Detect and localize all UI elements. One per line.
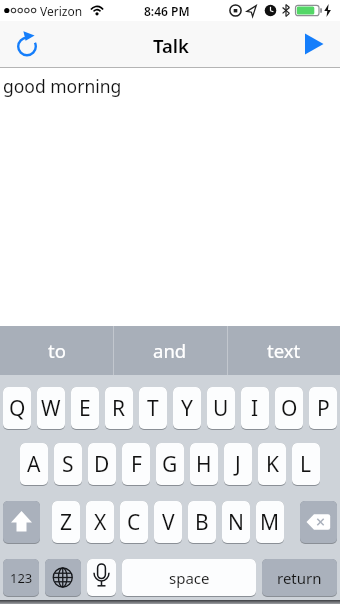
button[interactable]: A bbox=[20, 443, 48, 486]
button[interactable] bbox=[87, 559, 116, 597]
button[interactable] bbox=[300, 501, 337, 544]
staticText: T bbox=[147, 394, 159, 423]
staticText: good morning bbox=[3, 74, 122, 98]
staticText: Y bbox=[181, 394, 193, 423]
staticText: L bbox=[300, 450, 312, 479]
staticText: U bbox=[213, 394, 229, 423]
staticText: 8:46 PM bbox=[144, 3, 190, 19]
button[interactable]: X bbox=[86, 501, 114, 544]
button[interactable]: B bbox=[188, 501, 216, 544]
button[interactable]: U bbox=[207, 387, 235, 430]
button[interactable]: C bbox=[120, 501, 148, 544]
button[interactable]: text bbox=[227, 326, 340, 375]
staticText: return bbox=[277, 568, 322, 588]
staticText: P bbox=[317, 394, 330, 423]
button[interactable]: O bbox=[275, 387, 303, 430]
button[interactable]: W bbox=[37, 387, 65, 430]
button[interactable]: 123 bbox=[3, 559, 39, 597]
staticText: O bbox=[281, 394, 298, 423]
button[interactable]: M bbox=[256, 501, 284, 544]
button[interactable]: return bbox=[262, 559, 337, 597]
button[interactable]: J bbox=[224, 443, 252, 486]
button[interactable]: Z bbox=[52, 501, 80, 544]
button[interactable]: to bbox=[0, 326, 113, 375]
button[interactable] bbox=[298, 28, 330, 60]
staticText: B bbox=[195, 508, 209, 537]
button[interactable]: D bbox=[88, 443, 116, 486]
staticText: E bbox=[79, 394, 91, 423]
staticText: N bbox=[228, 508, 244, 537]
staticText: Verizon bbox=[40, 3, 83, 19]
staticText: S bbox=[62, 450, 74, 479]
staticText: H bbox=[196, 450, 212, 479]
staticText: and bbox=[153, 338, 187, 363]
button[interactable]: H bbox=[190, 443, 218, 486]
button[interactable]: and bbox=[113, 326, 226, 375]
staticText: R bbox=[112, 394, 126, 423]
button[interactable]: Q bbox=[3, 387, 31, 430]
staticText: A bbox=[27, 450, 41, 479]
button[interactable]: L bbox=[292, 443, 320, 486]
staticText: D bbox=[94, 450, 110, 479]
staticText: 123 bbox=[10, 569, 33, 587]
button[interactable]: F bbox=[122, 443, 150, 486]
staticText: M bbox=[260, 508, 280, 537]
button[interactable]: G bbox=[156, 443, 184, 486]
staticText: W bbox=[41, 394, 61, 423]
staticText: text bbox=[267, 338, 301, 363]
button[interactable] bbox=[3, 501, 40, 544]
button[interactable]: I bbox=[241, 387, 269, 430]
button[interactable]: Y bbox=[173, 387, 201, 430]
staticText: V bbox=[162, 508, 175, 537]
staticText: K bbox=[266, 450, 279, 479]
button[interactable]: K bbox=[258, 443, 286, 486]
button[interactable]: P bbox=[309, 387, 337, 430]
button[interactable]: N bbox=[222, 501, 250, 544]
staticText: G bbox=[162, 450, 178, 479]
staticText: Z bbox=[60, 508, 73, 537]
button[interactable]: space bbox=[122, 559, 256, 597]
staticText: I bbox=[251, 394, 259, 423]
staticText: Talk bbox=[153, 33, 189, 58]
staticText: C bbox=[127, 508, 141, 537]
button[interactable] bbox=[12, 28, 44, 60]
button[interactable] bbox=[45, 559, 81, 597]
staticText: Q bbox=[9, 394, 26, 423]
button[interactable]: S bbox=[54, 443, 82, 486]
staticText: J bbox=[235, 450, 241, 479]
staticText: space bbox=[169, 568, 210, 588]
button[interactable]: T bbox=[139, 387, 167, 430]
button[interactable]: V bbox=[154, 501, 182, 544]
staticText: to bbox=[48, 338, 66, 363]
button[interactable]: R bbox=[105, 387, 133, 430]
staticText: F bbox=[131, 450, 142, 479]
button[interactable]: E bbox=[71, 387, 99, 430]
staticText: X bbox=[94, 508, 107, 537]
